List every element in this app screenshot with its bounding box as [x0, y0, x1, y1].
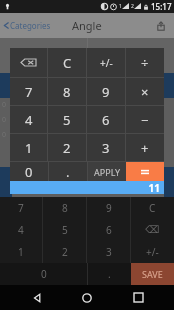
- button[interactable]: 3: [87, 134, 125, 161]
- staticText: 5: [63, 111, 71, 129]
- button[interactable]: +/-: [131, 241, 174, 263]
- staticText: +: [141, 139, 149, 157]
- button[interactable]: 2: [43, 241, 86, 263]
- button[interactable]: SAVE: [131, 263, 174, 285]
- button[interactable]: Categories: [3, 20, 51, 31]
- button[interactable]: 5: [48, 106, 86, 133]
- staticText: 0: [41, 267, 47, 281]
- button[interactable]: 6: [87, 106, 125, 133]
- button[interactable]: .: [49, 162, 87, 181]
- staticText: SAVE: [142, 268, 163, 280]
- staticText: 9: [106, 201, 112, 215]
- button[interactable]: Home: [73, 285, 101, 310]
- staticText: C: [149, 201, 156, 215]
- staticText: ÷: [141, 54, 149, 72]
- button[interactable]: 9: [87, 78, 125, 105]
- staticText: 4: [25, 111, 33, 129]
- staticText: Categories: [10, 20, 51, 31]
- button[interactable]: Equals: [126, 162, 164, 181]
- button[interactable]: 8: [43, 197, 86, 219]
- button[interactable]: +: [126, 134, 164, 161]
- button[interactable]: 1: [0, 241, 42, 263]
- button[interactable]: 0: [10, 162, 48, 181]
- staticText: 3: [106, 245, 112, 259]
- button[interactable]: ÷: [126, 48, 164, 77]
- staticText: C: [63, 54, 72, 72]
- staticText: 7: [18, 201, 24, 215]
- button[interactable]: 1: [10, 134, 47, 161]
- staticText: 0: [2, 130, 7, 140]
- button[interactable]: 0: [0, 263, 87, 285]
- button[interactable]: 4: [10, 106, 47, 133]
- staticText: ×: [141, 83, 149, 101]
- staticText: 6: [102, 111, 110, 129]
- button[interactable]: C: [131, 197, 174, 219]
- button[interactable]: 9: [87, 197, 130, 219]
- button[interactable]: 7: [10, 78, 47, 105]
- button[interactable]: Back: [23, 285, 51, 310]
- staticText: .: [108, 267, 111, 281]
- staticText: 1: [119, 3, 122, 10]
- button[interactable]: 4: [0, 219, 42, 241]
- button[interactable]: Share: [154, 19, 168, 33]
- staticText: APPLY: [94, 166, 121, 178]
- staticText: 0: [2, 115, 7, 125]
- button[interactable]: 5: [43, 219, 86, 241]
- staticText: −: [141, 111, 149, 129]
- staticText: 5: [62, 223, 68, 237]
- staticText: 8: [63, 83, 71, 101]
- staticText: 3: [102, 139, 110, 157]
- staticText: +/-: [146, 245, 159, 259]
- button[interactable]: 8: [48, 78, 86, 105]
- button[interactable]: ⌫: [131, 219, 174, 241]
- button[interactable]: C: [48, 48, 86, 77]
- staticText: 1: [18, 245, 24, 259]
- button[interactable]: 6: [87, 219, 130, 241]
- staticText: 1: [25, 139, 33, 157]
- button[interactable]: 7: [0, 197, 42, 219]
- button[interactable]: −: [126, 106, 164, 133]
- button[interactable]: ×: [126, 78, 164, 105]
- staticText: ⌫: [145, 224, 160, 236]
- staticText: 8: [62, 201, 68, 215]
- staticText: 7: [25, 83, 33, 101]
- staticText: 15:17: [151, 1, 172, 12]
- button[interactable]: APPLY: [88, 162, 126, 181]
- staticText: 9: [102, 83, 110, 101]
- staticText: 0: [25, 163, 33, 181]
- staticText: 2: [131, 3, 134, 10]
- staticText: 11: [148, 181, 160, 194]
- staticText: Angle: [72, 18, 102, 33]
- staticText: 6: [106, 223, 112, 237]
- staticText: .: [66, 163, 70, 181]
- staticText: 4: [18, 223, 24, 237]
- button[interactable]: 2: [48, 134, 86, 161]
- button[interactable]: 3: [87, 241, 130, 263]
- button[interactable]: Backspace: [10, 48, 47, 77]
- button[interactable]: +/-: [87, 48, 125, 77]
- staticText: 2: [63, 139, 71, 157]
- staticText: +/-: [100, 56, 113, 70]
- staticText: 0: [2, 100, 7, 110]
- staticText: 2: [62, 245, 68, 259]
- button[interactable]: Categories: [0, 13, 174, 38]
- button[interactable]: Recent apps: [124, 285, 152, 310]
